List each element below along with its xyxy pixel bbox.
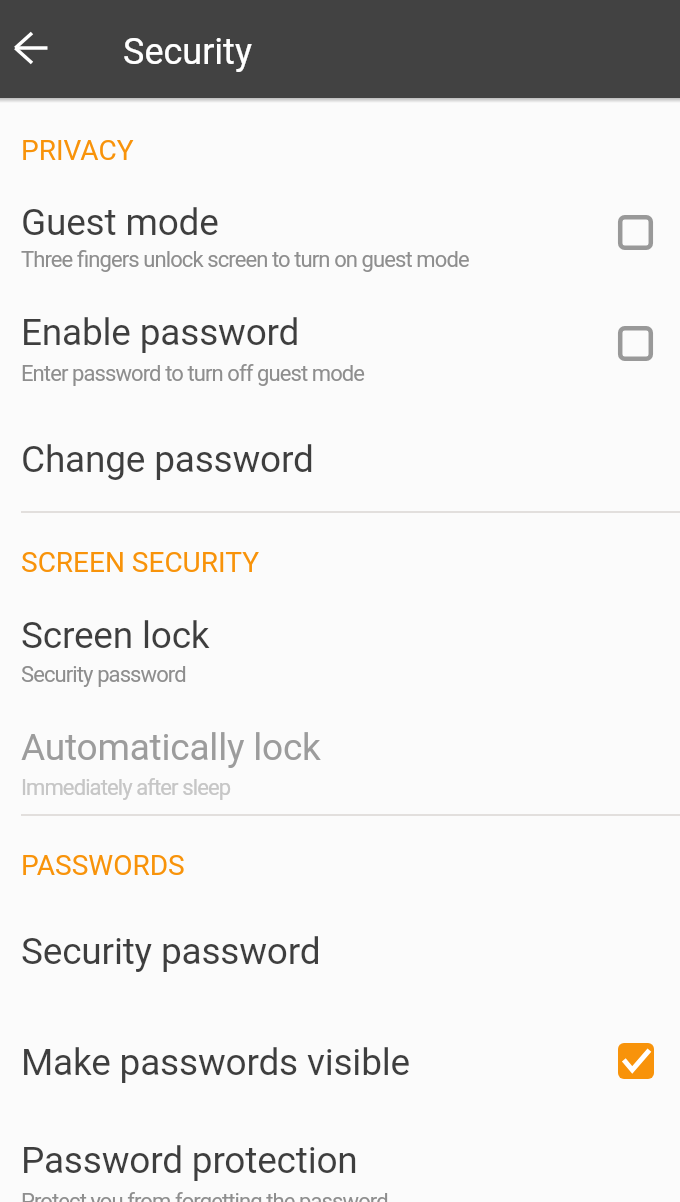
staticText: PASSWORDS [21,849,185,882]
staticText: Automatically lock [21,726,321,769]
staticText: Enter password to turn off guest mode [21,361,365,387]
staticText: Security password [21,662,186,688]
staticText: Security password [21,930,321,973]
staticText: SCREEN SECURITY [21,546,259,579]
staticText: Security [123,31,252,73]
staticText: Three fingers unlock screen to turn on g… [21,247,469,273]
staticText: Screen lock [21,614,210,657]
button[interactable] [1,17,63,79]
staticText: Immediately after sleep [21,775,231,801]
staticText: Protect you from forgetting the password [21,1189,388,1202]
button[interactable]: Change password [0,438,680,512]
button[interactable]: Password protection [0,1139,680,1202]
staticText: PRIVACY [21,134,134,167]
staticText: Enable password [21,311,300,354]
button[interactable]: Screen lock [0,614,680,718]
button[interactable]: Security password [0,930,680,1016]
button[interactable]: Enable password [0,311,680,421]
staticText: Guest mode [21,201,219,244]
staticText: Password protection [21,1139,358,1182]
button[interactable]: Automatically lock [0,726,680,830]
button[interactable]: Guest mode [0,201,680,305]
button[interactable]: Make passwords visible [0,1041,680,1127]
staticText: Change password [21,438,314,481]
staticText: Make passwords visible [21,1041,410,1084]
